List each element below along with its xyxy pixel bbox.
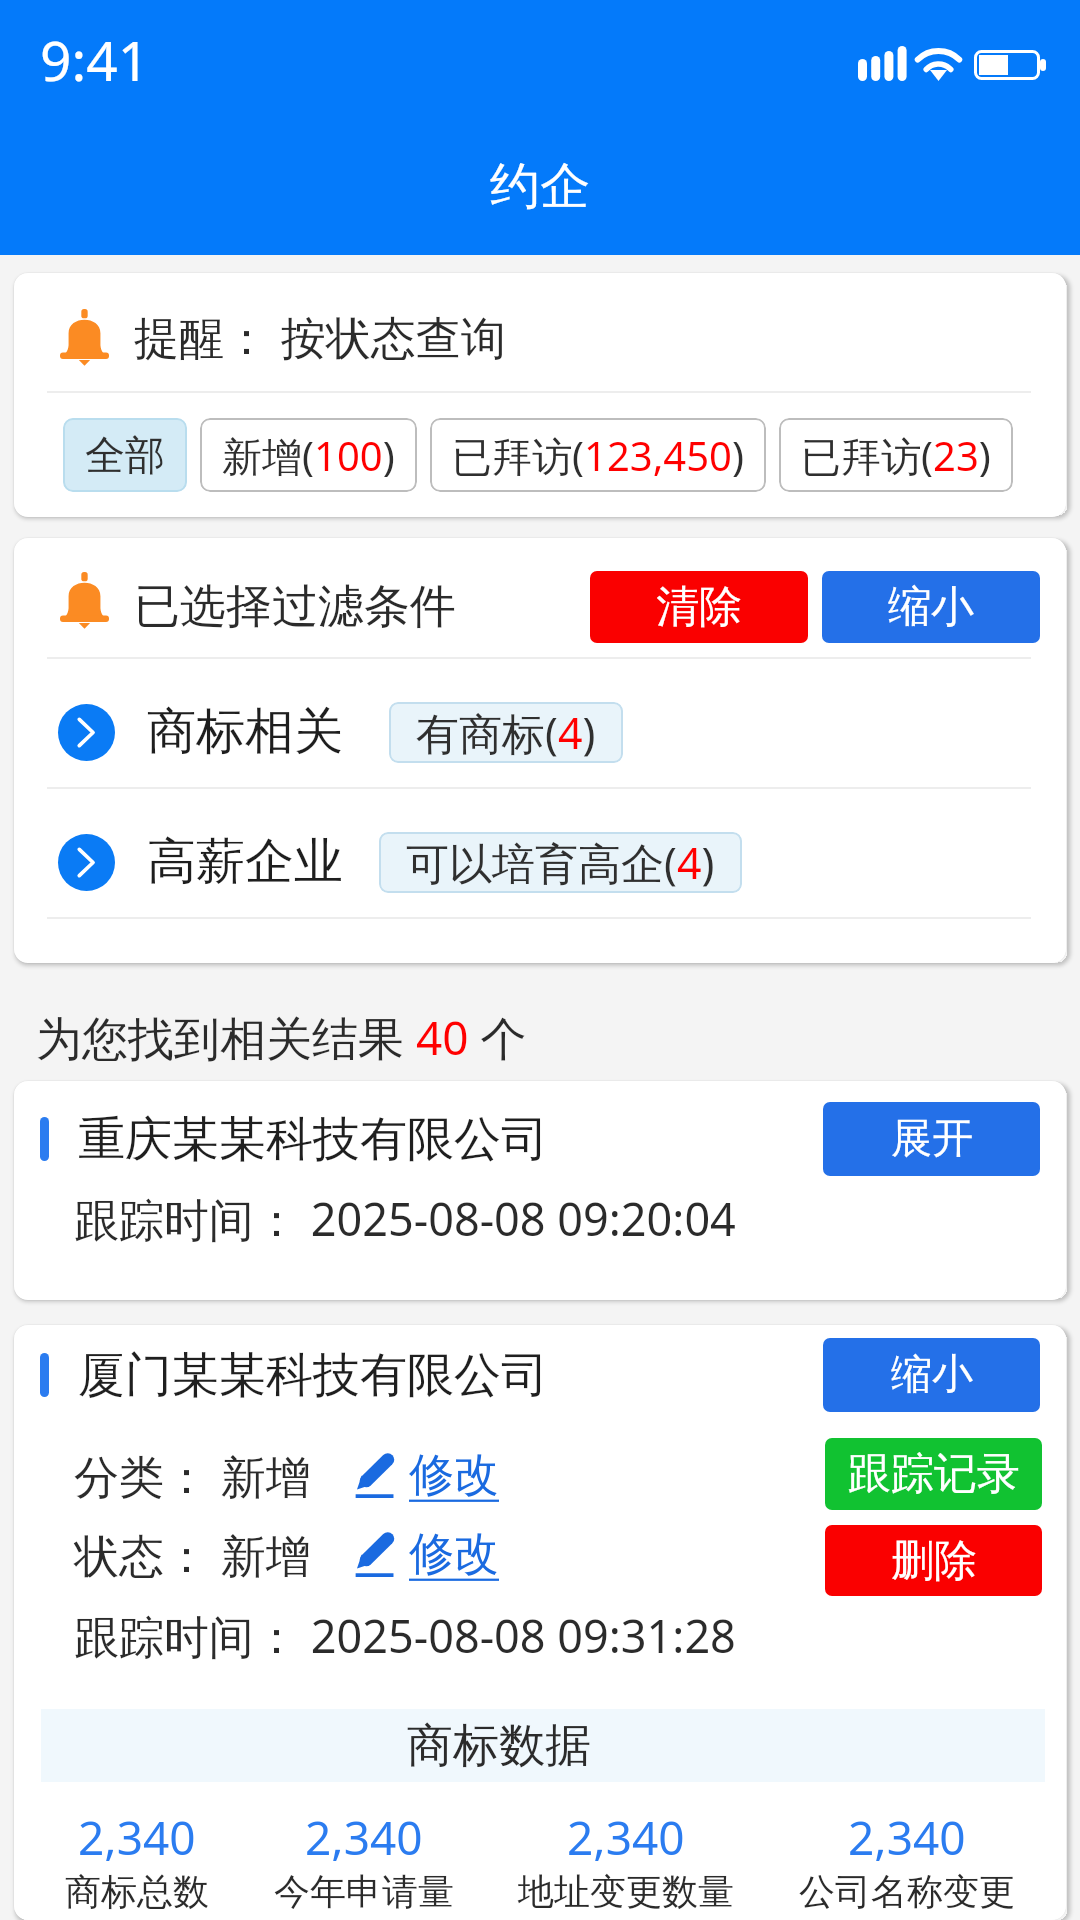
button[interactable]: 展开高薪企业 bbox=[14, 789, 1066, 917]
staticText: 2,340 bbox=[305, 1806, 423, 1869]
button[interactable]: 缩小 bbox=[822, 571, 1040, 643]
staticText: 跟踪时间： 2025-08-08 09:20:04 bbox=[74, 1188, 736, 1249]
button[interactable]: 有商标(4) bbox=[389, 702, 623, 763]
button[interactable]: 展开高薪企业 bbox=[58, 834, 115, 891]
staticText: 为您找到相关结果 40 个 bbox=[36, 1006, 527, 1069]
staticText: 缩小 bbox=[888, 580, 974, 634]
button[interactable]: 清除 bbox=[590, 571, 808, 643]
staticText: 展开 bbox=[891, 1113, 973, 1165]
staticText: 商标数据 bbox=[407, 1717, 591, 1775]
button[interactable]: 展开商标相关 bbox=[14, 659, 1066, 787]
staticText: 已选择过滤条件 bbox=[134, 578, 456, 636]
staticText: 有商标(4) bbox=[416, 703, 596, 762]
button[interactable]: 已拜访(23) bbox=[779, 418, 1013, 492]
staticText: 地址变更数量 bbox=[518, 1869, 734, 1914]
button[interactable]: 修改 bbox=[353, 1447, 499, 1504]
staticText: 提醒： 按状态查询 bbox=[134, 306, 506, 367]
button[interactable]: 可以培育高企(4) bbox=[379, 832, 742, 893]
staticText: 缩小 bbox=[891, 1349, 973, 1401]
button[interactable]: 缩小 bbox=[823, 1338, 1040, 1412]
button[interactable]: 展开商标相关 bbox=[58, 704, 115, 761]
staticText: 可以培育高企(4) bbox=[406, 833, 715, 892]
staticText: 商标总数 bbox=[65, 1869, 209, 1914]
staticText: 厦门某某科技有限公司 bbox=[78, 1346, 548, 1405]
button[interactable]: 删除 bbox=[825, 1525, 1042, 1596]
staticText: 2,340 bbox=[848, 1806, 966, 1869]
staticText: 新增(100) bbox=[222, 428, 395, 483]
staticText: 商标相关 bbox=[147, 701, 343, 763]
button[interactable]: 修改 bbox=[353, 1526, 499, 1583]
button[interactable]: 新增(100) bbox=[200, 418, 417, 492]
button[interactable]: 展开 bbox=[823, 1102, 1040, 1176]
staticText: 跟踪时间： 2025-08-08 09:31:28 bbox=[74, 1605, 736, 1666]
staticText: 跟踪记录 bbox=[848, 1447, 1020, 1501]
staticText: 2,340 bbox=[567, 1806, 685, 1869]
staticText: 今年申请量 bbox=[274, 1869, 454, 1914]
staticText: 公司名称变更 bbox=[799, 1869, 1015, 1914]
staticText: 删除 bbox=[891, 1534, 977, 1588]
staticText: 重庆某某科技有限公司 bbox=[78, 1110, 548, 1169]
staticText: 已拜访(123,450) bbox=[452, 428, 744, 483]
staticText: 状态： 新增 bbox=[74, 1524, 311, 1585]
staticText: 9:41 bbox=[40, 22, 150, 97]
staticText: 约企 bbox=[490, 155, 590, 218]
staticText: 2,340 bbox=[78, 1806, 196, 1869]
staticText: 清除 bbox=[656, 580, 742, 634]
staticText: 分类： 新增 bbox=[74, 1445, 311, 1506]
staticText: 已拜访(23) bbox=[801, 428, 991, 483]
button[interactable]: 跟踪记录 bbox=[825, 1438, 1042, 1510]
staticText: 修改 bbox=[409, 1447, 499, 1504]
staticText: 全部 bbox=[85, 430, 165, 480]
button[interactable]: 已拜访(123,450) bbox=[430, 418, 766, 492]
staticText: 高薪企业 bbox=[147, 831, 343, 893]
button[interactable]: 全部 bbox=[63, 418, 187, 492]
staticText: 修改 bbox=[409, 1526, 499, 1583]
